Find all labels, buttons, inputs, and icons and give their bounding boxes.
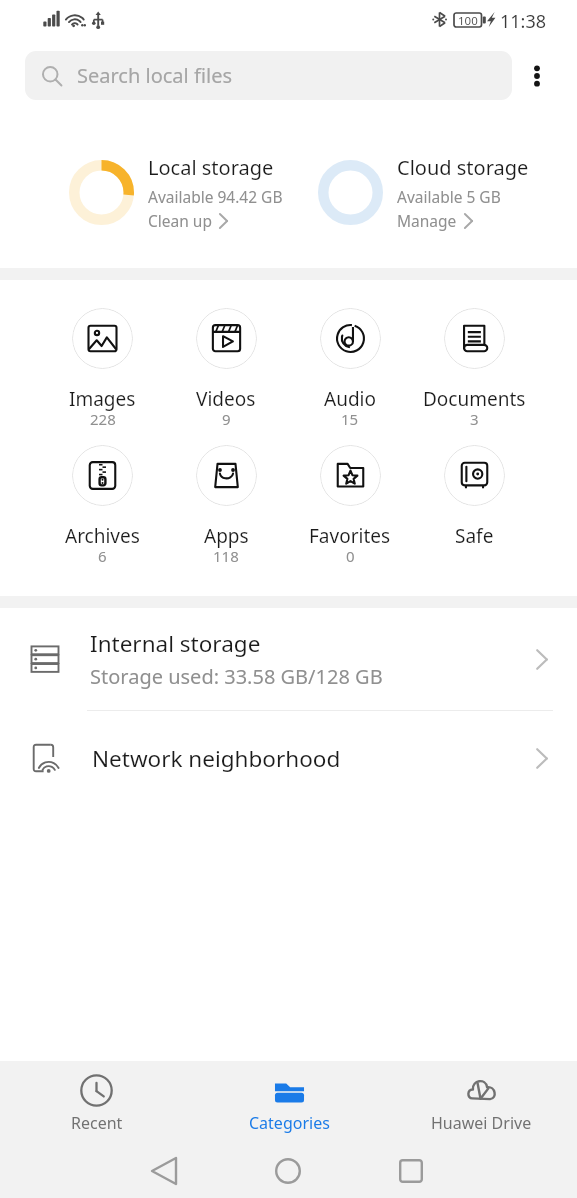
- button[interactable]: Search local files: [25, 51, 512, 100]
- staticText: Images: [69, 386, 136, 412]
- staticText: Archives: [65, 523, 140, 549]
- staticText: 3: [470, 409, 479, 429]
- button[interactable]: Local storage: [69, 100, 309, 268]
- button[interactable]: More options: [515, 54, 559, 98]
- button[interactable]: Categories: [193, 1074, 385, 1143]
- button[interactable]: Cloud storage: [318, 100, 558, 268]
- button[interactable]: Internal storage: [0, 608, 577, 710]
- staticText: 11:38: [500, 9, 547, 34]
- button[interactable]: Videos: [164, 308, 288, 445]
- staticText: 100: [458, 13, 478, 29]
- staticText: Storage used: 33.58 GB/128 GB: [90, 663, 383, 690]
- button[interactable]: Favorites: [288, 445, 412, 582]
- button[interactable]: Images: [41, 308, 164, 445]
- staticText: Categories: [249, 1112, 330, 1134]
- button[interactable]: Apps: [164, 445, 288, 582]
- button[interactable]: Home: [244, 1143, 332, 1198]
- staticText: 228: [90, 409, 116, 429]
- button[interactable]: Audio: [288, 308, 412, 445]
- staticText: Available 94.42 GB: [148, 186, 283, 207]
- staticText: Documents: [423, 386, 526, 412]
- staticText: Videos: [196, 386, 256, 412]
- staticText: Favorites: [309, 523, 391, 549]
- staticText: Local storage: [148, 154, 274, 181]
- button[interactable]: Safe: [412, 445, 536, 582]
- button[interactable]: Network neighborhood: [0, 711, 577, 805]
- button[interactable]: Documents: [412, 308, 536, 445]
- button[interactable]: Recent: [0, 1074, 193, 1143]
- staticText: Apps: [204, 523, 249, 549]
- button[interactable]: Recent apps: [367, 1143, 455, 1198]
- staticText: Manage: [397, 210, 457, 231]
- staticText: 6: [98, 546, 107, 566]
- staticText: Audio: [324, 386, 376, 412]
- staticText: Huawei Drive: [431, 1112, 532, 1134]
- staticText: Cloud storage: [397, 154, 529, 181]
- staticText: Clean up: [148, 210, 212, 231]
- staticText: 15: [341, 409, 359, 429]
- staticText: Network neighborhood: [92, 743, 341, 774]
- button[interactable]: Huawei Drive: [385, 1074, 577, 1143]
- staticText: Internal storage: [90, 628, 261, 659]
- staticText: Recent: [71, 1112, 123, 1134]
- button[interactable]: Archives: [41, 445, 164, 582]
- staticText: Search local files: [77, 62, 232, 89]
- staticText: 9: [222, 409, 231, 429]
- staticText: 118: [213, 546, 239, 566]
- button[interactable]: Back: [120, 1143, 208, 1198]
- staticText: Safe: [455, 523, 494, 549]
- staticText: Available 5 GB: [397, 186, 501, 207]
- staticText: 0: [346, 546, 355, 566]
